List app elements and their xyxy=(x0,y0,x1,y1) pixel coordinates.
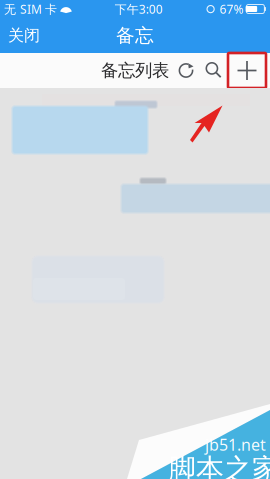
button[interactable]: Search xyxy=(200,53,228,88)
staticText: jb51.net xyxy=(205,434,266,455)
staticText: 备忘列表 xyxy=(101,60,169,81)
button[interactable]: New note xyxy=(228,53,266,88)
button[interactable]: 关闭 xyxy=(0,18,48,53)
staticText: 备忘 xyxy=(116,24,154,47)
staticText: 关闭 xyxy=(8,26,40,45)
staticText: 脚本之家 xyxy=(168,452,270,479)
staticText: 下午3:00 xyxy=(115,1,163,17)
button[interactable]: Refresh xyxy=(172,53,200,88)
staticText: 67% xyxy=(219,1,243,17)
staticText: 无 SIM 卡 xyxy=(4,1,57,17)
